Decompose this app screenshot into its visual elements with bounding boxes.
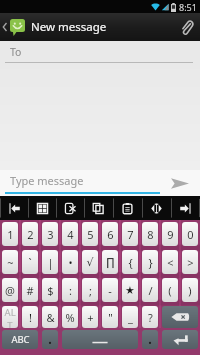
- button[interactable]: (: [162, 278, 178, 302]
- staticText: #: [26, 283, 34, 298]
- button[interactable]: &: [42, 306, 58, 328]
- button[interactable]: 1: [2, 222, 18, 246]
- staticText: 1: [7, 227, 14, 242]
- button[interactable]: Back: [0, 13, 26, 41]
- button[interactable]: 7: [122, 222, 138, 246]
- staticText: ALT: [2, 306, 18, 328]
- staticText: New message: [31, 19, 107, 35]
- button[interactable]: |: [42, 250, 58, 274]
- button[interactable]: ;: [82, 278, 98, 302]
- button[interactable]: ?: [142, 306, 158, 328]
- button[interactable]: Type message: [0, 170, 160, 196]
- button[interactable]: Move to end: [171, 196, 200, 220]
- staticText: (: [168, 283, 172, 298]
- other: Back: [2, 22, 7, 32]
- staticText: }: [148, 255, 153, 270]
- staticText: 2: [27, 227, 34, 242]
- button[interactable]: `: [22, 250, 38, 274]
- button[interactable]: 5: [82, 222, 98, 246]
- button[interactable]: ": [102, 306, 118, 328]
- staticText: 0: [187, 227, 194, 242]
- staticText: 7: [127, 227, 134, 242]
- button[interactable]: ALT: [2, 306, 18, 328]
- button[interactable]: +: [82, 306, 98, 328]
- staticText: Type message: [10, 173, 84, 188]
- staticText: 9: [167, 227, 174, 242]
- button[interactable]: }: [142, 250, 158, 274]
- button[interactable]: _: [122, 306, 138, 328]
- button[interactable]: ★: [122, 278, 138, 302]
- staticText: ∏: [106, 256, 115, 269]
- staticText: !: [29, 310, 32, 325]
- button[interactable]: -: [102, 278, 118, 302]
- button[interactable]: 9: [162, 222, 178, 246]
- staticText: $: [47, 283, 54, 298]
- button[interactable]: 3: [42, 222, 58, 246]
- staticText: >: [187, 255, 194, 270]
- button[interactable]: backspace: [162, 306, 198, 328]
- staticText: ~: [7, 255, 14, 270]
- button[interactable]: !: [22, 306, 38, 328]
- button[interactable]: Cut: [56, 196, 84, 220]
- button[interactable]: @: [2, 278, 18, 302]
- button[interactable]: ): [182, 278, 198, 302]
- staticText: <: [167, 255, 174, 270]
- button[interactable]: <: [162, 250, 178, 274]
- staticText: To: [10, 45, 22, 59]
- staticText: :: [69, 283, 72, 298]
- staticText: -: [108, 283, 112, 298]
- button[interactable]: 6: [102, 222, 118, 246]
- staticText: 8:51: [179, 1, 197, 13]
- staticText: •: [68, 255, 73, 270]
- button[interactable]: $: [42, 278, 58, 302]
- button[interactable]: Send: [160, 170, 200, 196]
- button[interactable]: >: [182, 250, 198, 274]
- staticText: &: [46, 310, 55, 325]
- button[interactable]: #: [22, 278, 38, 302]
- button[interactable]: %: [62, 306, 78, 328]
- staticText: |: [47, 255, 54, 270]
- button[interactable]: dot: [142, 330, 158, 349]
- button[interactable]: enter: [162, 330, 198, 349]
- staticText: _: [128, 310, 133, 325]
- staticText: {: [128, 255, 133, 270]
- button[interactable]: Attach: [173, 13, 200, 41]
- button[interactable]: 4: [62, 222, 78, 246]
- staticText: 3: [47, 227, 54, 242]
- button[interactable]: /: [142, 278, 158, 302]
- button[interactable]: √: [82, 250, 98, 274]
- staticText: @: [5, 283, 15, 298]
- staticText: 5: [87, 227, 94, 242]
- button[interactable]: Select: [142, 196, 171, 220]
- button[interactable]: ∏: [102, 250, 118, 274]
- staticText: ;: [89, 283, 92, 298]
- button[interactable]: Copy: [84, 196, 113, 220]
- staticText: 4: [67, 227, 74, 242]
- staticText: +: [87, 310, 94, 325]
- button[interactable]: Paste: [113, 196, 142, 220]
- staticText: ?: [148, 310, 153, 325]
- button[interactable]: ~: [2, 250, 18, 274]
- staticText: ): [188, 283, 192, 298]
- button[interactable]: •: [62, 250, 78, 274]
- button[interactable]: ABC: [2, 330, 38, 349]
- button[interactable]: dot: [42, 330, 58, 349]
- button[interactable]: :: [62, 278, 78, 302]
- staticText: ABC: [11, 333, 30, 346]
- staticText: /: [148, 283, 153, 298]
- button[interactable]: space: [62, 330, 138, 349]
- staticText: ★: [125, 284, 135, 297]
- button[interactable]: {: [122, 250, 138, 274]
- button[interactable]: 8: [142, 222, 158, 246]
- staticText: 6: [107, 227, 114, 242]
- button[interactable]: Move to start: [0, 196, 28, 220]
- staticText: 8: [147, 227, 154, 242]
- button[interactable]: 2: [22, 222, 38, 246]
- staticText: ": [108, 310, 113, 325]
- staticText: √: [86, 256, 94, 269]
- staticText: `: [28, 255, 32, 270]
- button[interactable]: Keyboard grid: [28, 196, 56, 220]
- staticText: %: [65, 310, 75, 325]
- button[interactable]: To: [0, 41, 200, 62]
- button[interactable]: 0: [182, 222, 198, 246]
